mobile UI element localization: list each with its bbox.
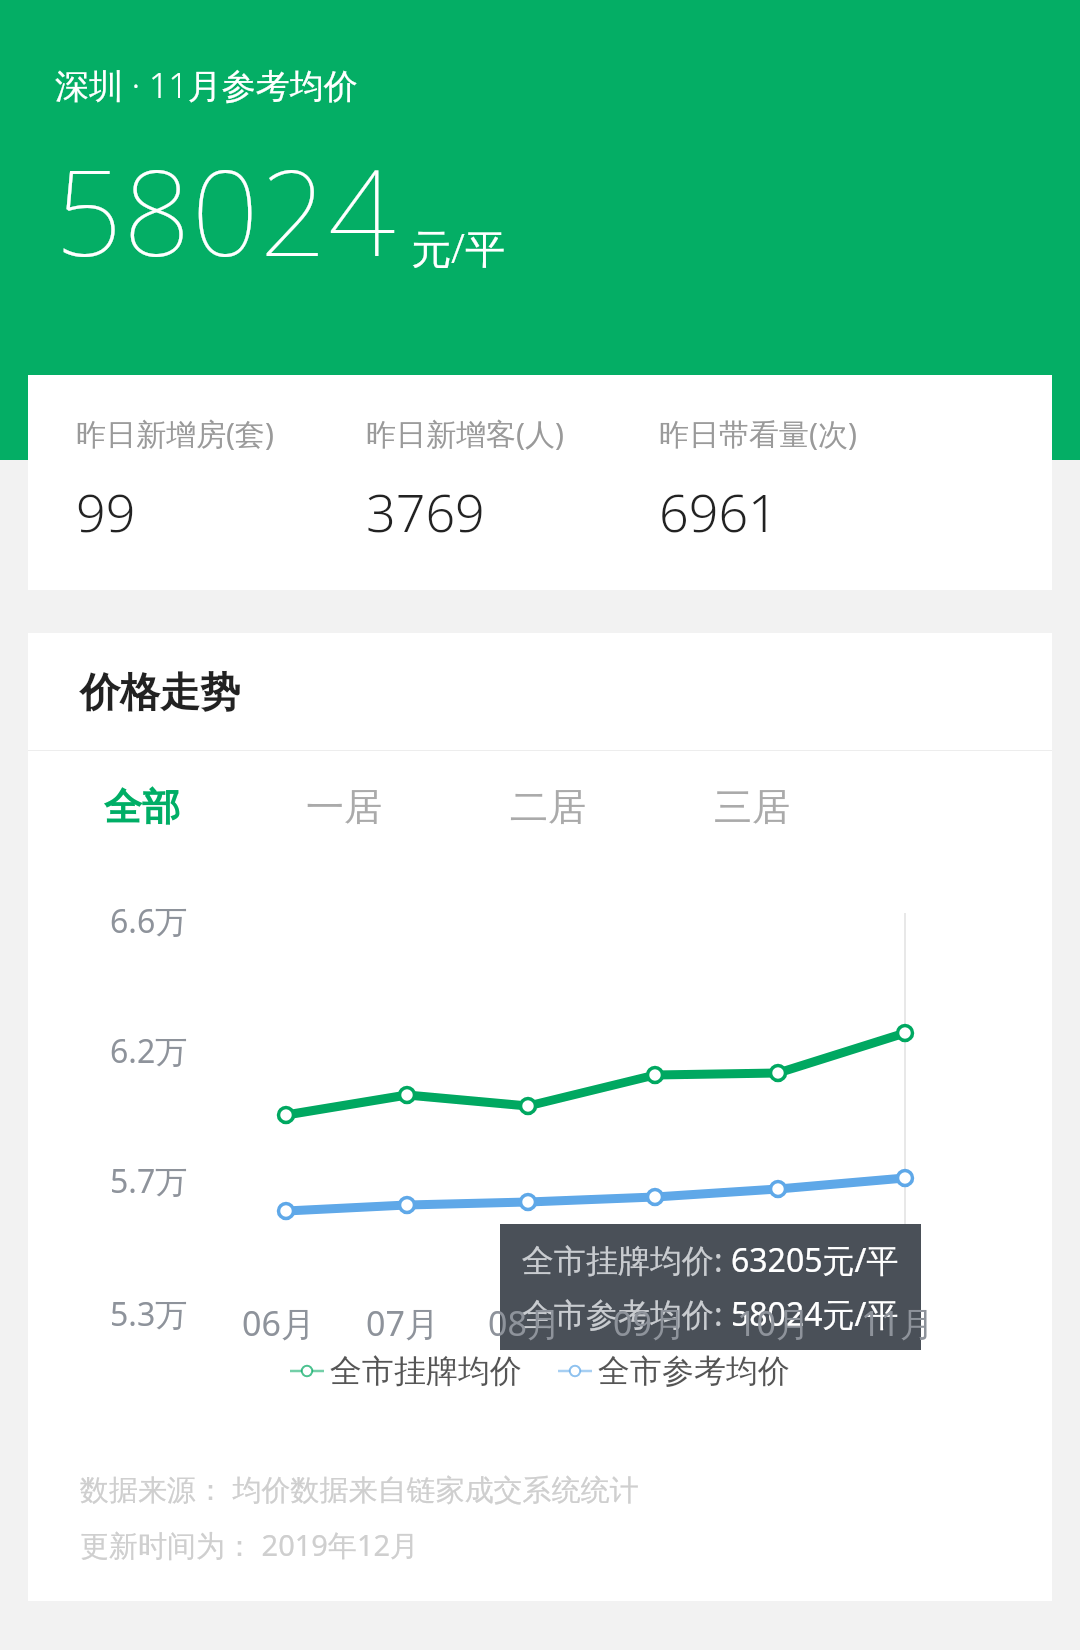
staticText: 昨日新增客(人) — [366, 413, 564, 454]
staticText: 5.7万 — [110, 1159, 188, 1203]
staticText: 三居 — [714, 783, 790, 831]
staticText: 6.6万 — [110, 899, 188, 943]
staticText: 全市挂牌均价: — [522, 1238, 731, 1282]
button[interactable]: 全部 — [100, 773, 184, 841]
staticText: 6961 — [659, 476, 778, 547]
button[interactable]: 一居 — [302, 773, 386, 841]
staticText: 更新时间为： 2019年12月 — [80, 1525, 420, 1565]
staticText: 58024元/平 — [731, 1292, 899, 1336]
staticText: 全市挂牌均价 — [330, 1351, 522, 1391]
staticText: 深圳 · 11月参考均价 — [55, 62, 358, 108]
staticText: 元/平 — [411, 220, 505, 275]
staticText: 10月 — [737, 1300, 810, 1346]
staticText: 06月 — [242, 1300, 315, 1346]
staticText: 全部 — [104, 783, 180, 831]
button[interactable]: 二居 — [506, 773, 590, 841]
staticText: 价格走势 — [80, 667, 240, 717]
staticText: 6.2万 — [110, 1029, 188, 1073]
staticText: 58024 — [55, 130, 397, 291]
staticText: 数据来源： 均价数据来自链家成交系统统计 — [80, 1469, 639, 1509]
staticText: 昨日新增房(套) — [76, 413, 274, 454]
staticText: 09月 — [613, 1300, 686, 1346]
staticText: 07月 — [366, 1300, 439, 1346]
staticText: 3769 — [366, 476, 485, 547]
button[interactable]: 全市挂牌均价 — [290, 1351, 522, 1391]
staticText: 一居 — [306, 783, 382, 831]
staticText: 全市参考均价: — [522, 1292, 731, 1336]
staticText: 08月 — [488, 1300, 561, 1346]
staticText: 全市参考均价 — [598, 1351, 790, 1391]
staticText: 63205元/平 — [731, 1238, 899, 1282]
staticText: 二居 — [510, 783, 586, 831]
staticText: 11月 — [861, 1300, 934, 1346]
button[interactable]: 三居 — [710, 773, 794, 841]
staticText: 5.3万 — [110, 1292, 188, 1336]
staticText: 昨日带看量(次) — [659, 413, 857, 454]
button[interactable]: 全市参考均价 — [558, 1351, 790, 1391]
staticText: 99 — [76, 476, 136, 547]
